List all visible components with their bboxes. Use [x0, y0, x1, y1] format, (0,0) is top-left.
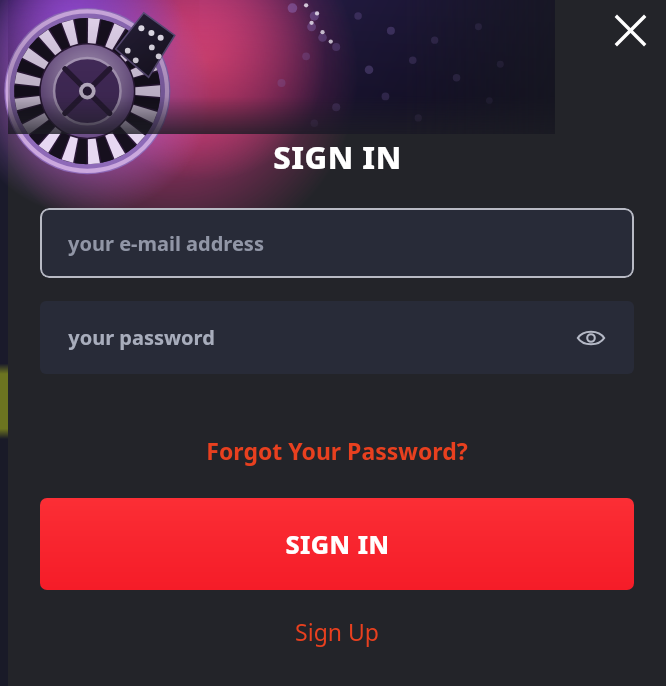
- button[interactable]: your e-mail address: [40, 208, 634, 278]
- staticText: Sign Up: [295, 616, 379, 647]
- button[interactable]: Forgot Your Password?: [194, 431, 480, 470]
- staticText: SIGN IN: [273, 136, 402, 178]
- button[interactable]: SIGN IN: [40, 498, 634, 590]
- staticText: your password: [68, 324, 215, 351]
- button[interactable]: Close: [602, 2, 658, 58]
- button[interactable]: Sign Up: [281, 612, 393, 651]
- staticText: SIGN IN: [285, 527, 390, 561]
- staticText: your e-mail address: [68, 230, 264, 257]
- button[interactable]: your password: [40, 301, 634, 374]
- button[interactable]: Show password: [572, 319, 610, 357]
- staticText: Forgot Your Password?: [206, 435, 468, 466]
